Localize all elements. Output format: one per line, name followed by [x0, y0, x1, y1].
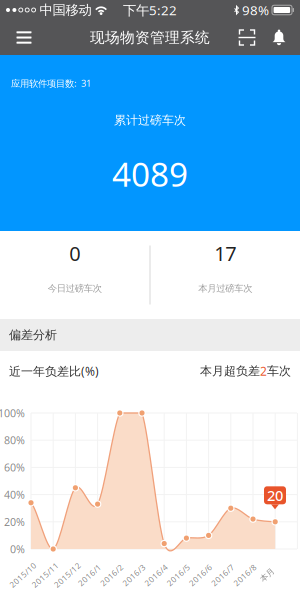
staticText: 车次	[267, 364, 291, 378]
staticText: 应用软件项目数: 31	[11, 77, 91, 89]
staticText: 20	[267, 486, 283, 505]
staticText: 本月	[259, 570, 275, 580]
staticText: 0	[69, 240, 80, 267]
staticText: 2016/8	[231, 570, 259, 580]
staticText: 0%	[10, 542, 25, 556]
staticText: 2016/6	[187, 570, 215, 580]
staticText: 2016/4	[142, 570, 170, 580]
staticText: 2016/3	[120, 570, 148, 580]
staticText: 现场物资管理系统	[90, 28, 210, 46]
staticText: 中国移动	[40, 2, 92, 18]
staticText: 偏差分析	[9, 328, 57, 342]
staticText: 2016/2	[98, 570, 126, 580]
staticText: 40%	[4, 487, 25, 502]
staticText: 4089	[112, 152, 188, 196]
staticText: 今日过磅车次	[48, 283, 102, 294]
staticText: 98%	[242, 1, 269, 19]
staticText: 2016/7	[209, 570, 237, 580]
staticText: 17	[214, 240, 236, 267]
staticText: 2015/10	[6, 570, 39, 580]
staticText: 2015/12	[51, 570, 84, 580]
staticText: 本月过磅车次	[198, 283, 252, 294]
staticText: 2	[260, 363, 267, 379]
staticText: 本月超负差	[200, 364, 260, 378]
button[interactable]: Scan	[230, 19, 264, 55]
staticText: 20%	[4, 515, 25, 529]
staticText: 2016/5	[164, 570, 192, 580]
staticText: 近一年负差比(%)	[9, 363, 99, 379]
button[interactable]: Notifications	[264, 19, 294, 55]
staticText: 60%	[4, 460, 25, 474]
button[interactable]: Menu	[6, 19, 42, 55]
staticText: 2016/1	[76, 570, 104, 580]
staticText: 下午5:22	[123, 1, 177, 19]
staticText: 累计过磅车次	[114, 113, 186, 128]
staticText: 100%	[0, 406, 25, 420]
staticText: 80%	[4, 433, 25, 447]
staticText: 2015/11	[29, 570, 62, 580]
